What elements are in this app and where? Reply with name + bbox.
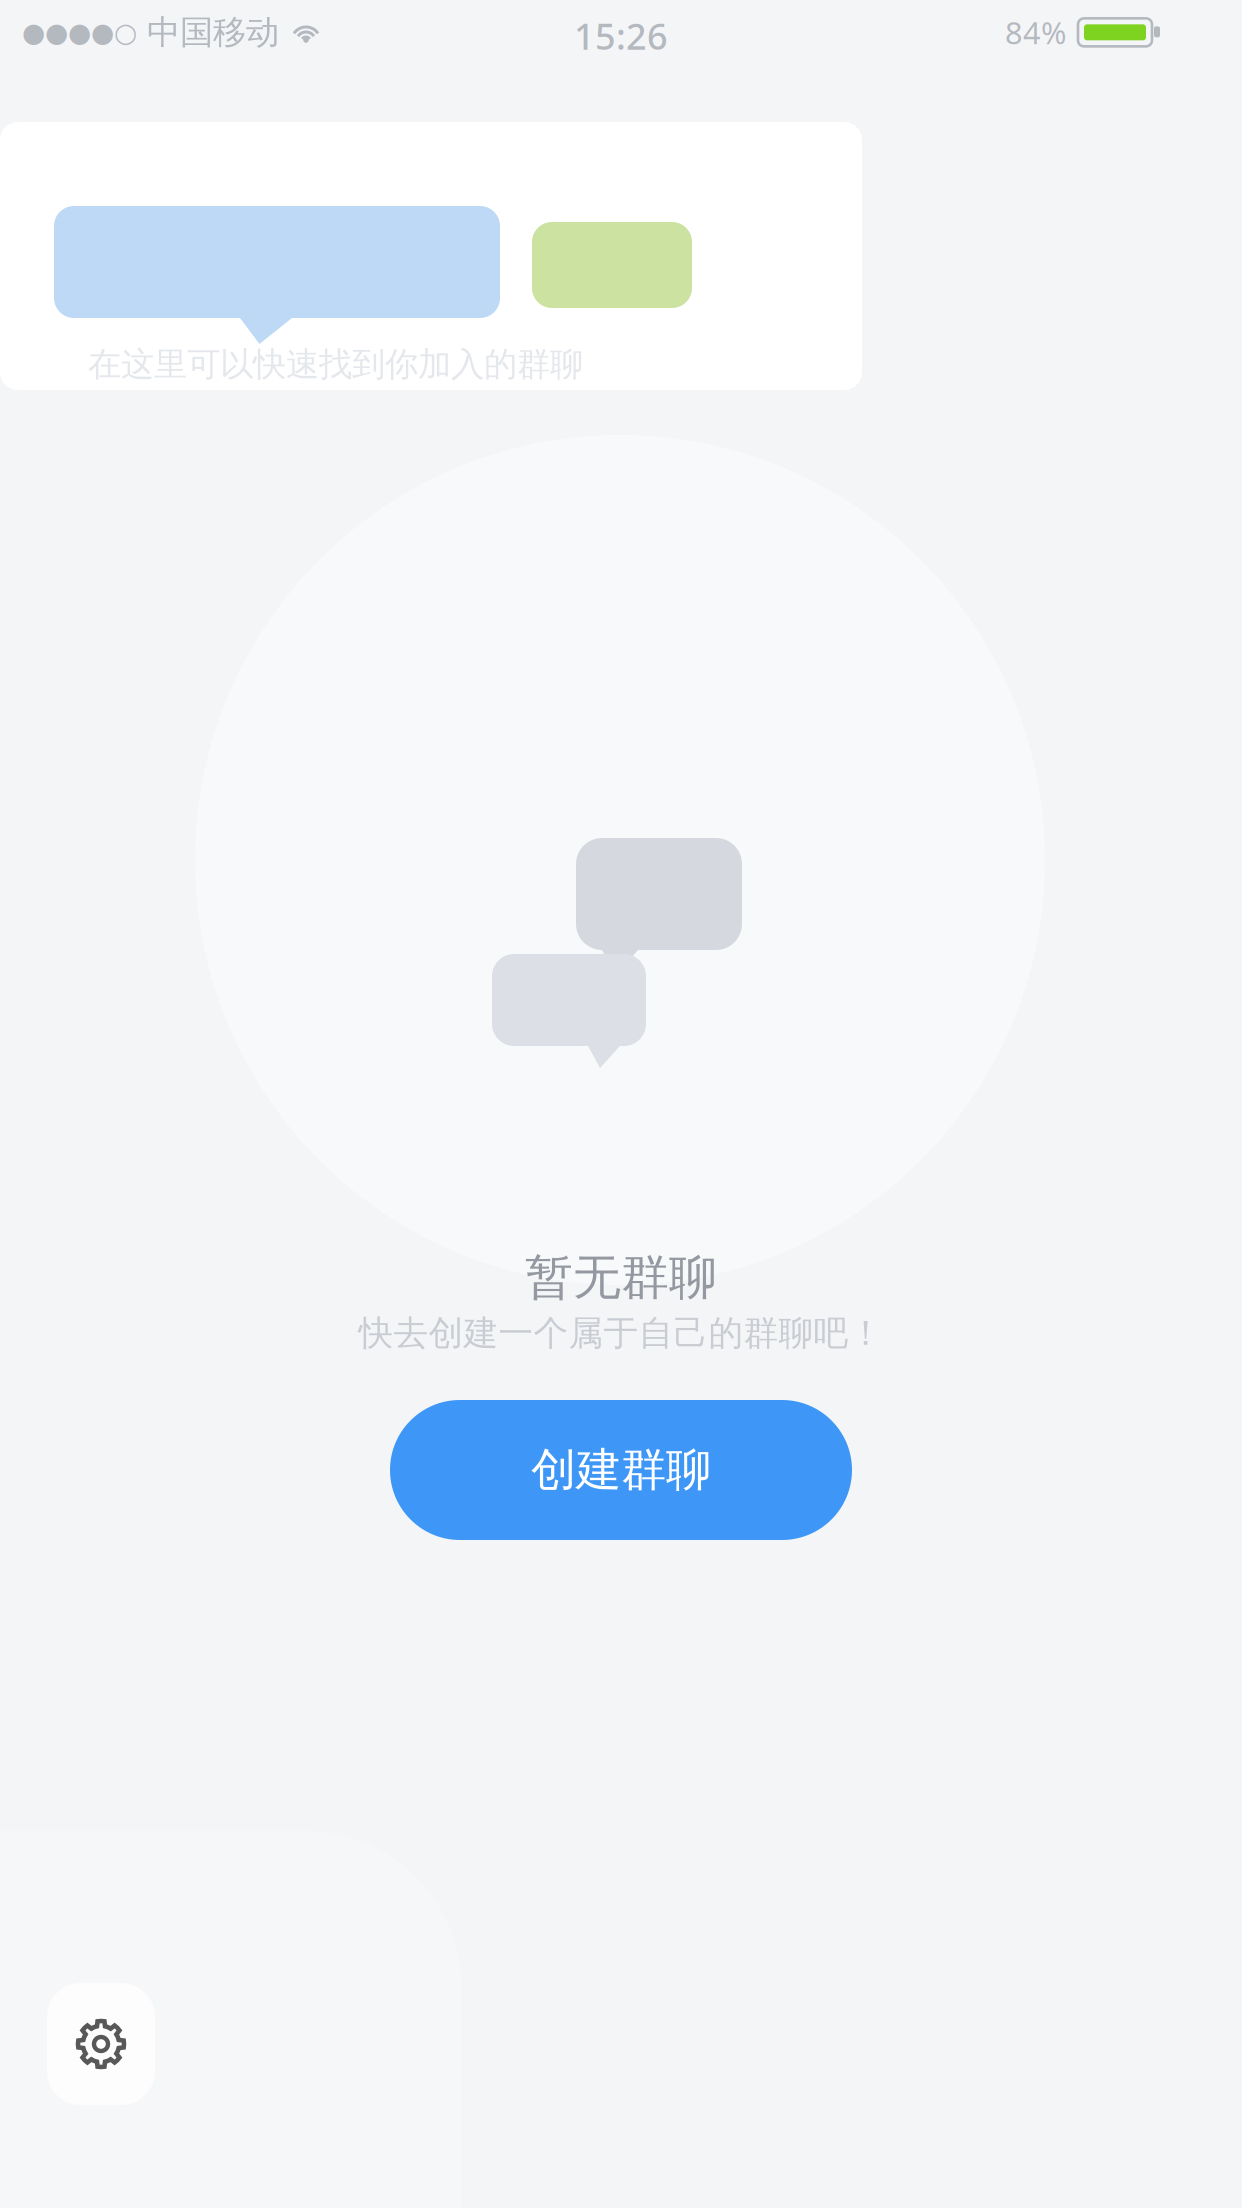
staticText: 快去创建一个属于自己的群聊吧！ <box>358 1312 883 1355</box>
staticText: 暂无群聊 <box>525 1248 717 1307</box>
staticText: ●●●●○ <box>22 17 137 48</box>
staticText: 84% <box>1005 12 1066 53</box>
staticText: 15:26 <box>574 12 668 60</box>
button[interactable]: 创建群聊 <box>390 1400 852 1540</box>
button[interactable]: Settings <box>47 1983 155 2105</box>
staticText: 中国移动 <box>147 12 279 53</box>
staticText: 在这里可以快速找到你加入的群聊 <box>88 344 583 385</box>
staticText: 创建群聊 <box>531 1442 711 1498</box>
